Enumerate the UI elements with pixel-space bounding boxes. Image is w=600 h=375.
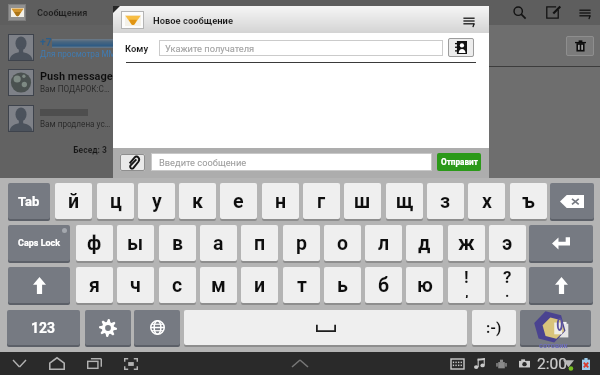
button[interactable]: ц (97, 183, 134, 219)
button[interactable]: е (220, 183, 257, 219)
button[interactable]: Screenshot saved (506, 352, 542, 375)
button[interactable]: Push message (0, 65, 230, 99)
button[interactable]: ъ (510, 183, 547, 219)
staticText: ю (417, 274, 433, 297)
button[interactable]: и (241, 267, 278, 303)
button[interactable]: л (365, 225, 402, 261)
button[interactable]: Screenshot (113, 352, 149, 375)
button[interactable]: х (468, 183, 505, 219)
button[interactable]: ж (448, 225, 485, 261)
button[interactable]: Recent apps (76, 352, 112, 375)
button[interactable]: г (303, 183, 340, 219)
button[interactable]: м (200, 267, 237, 303)
button[interactable]: Settings (85, 310, 131, 345)
staticText: Вам ПОДАРОК:С… (40, 84, 110, 94)
staticText: ъ (522, 190, 535, 213)
button[interactable]: Search (503, 0, 536, 25)
button[interactable]: р (283, 225, 320, 261)
button[interactable]: Expand (282, 352, 318, 375)
button[interactable]: Введите сообщение (151, 153, 432, 171)
button[interactable]: у (138, 183, 175, 219)
button[interactable]: Укажите получателя (159, 40, 443, 56)
button[interactable]: д (406, 225, 443, 261)
button[interactable]: Tab (8, 183, 50, 219)
button[interactable]: Compose message (536, 0, 569, 25)
button[interactable]: System (483, 352, 519, 375)
button[interactable]: й (55, 183, 92, 219)
staticText: Tab (18, 194, 40, 209)
button[interactable]: Caps Lock (8, 225, 70, 261)
staticText: ? (503, 267, 512, 287)
staticText: Caps Lock (18, 238, 61, 249)
button[interactable]: Enter (529, 225, 593, 261)
staticText: з (440, 190, 451, 213)
staticText: я (89, 274, 100, 297)
button[interactable]: ш (344, 183, 381, 219)
button[interactable]: ч (117, 267, 154, 303)
button[interactable]: ю (406, 267, 443, 303)
staticText: с (172, 274, 183, 297)
staticText: м (211, 274, 226, 297)
button[interactable]: Attach file (120, 154, 145, 171)
button[interactable]: щ (386, 183, 423, 219)
staticText: Push message (40, 70, 113, 83)
staticText: д (418, 232, 431, 255)
button[interactable]: а (200, 225, 237, 261)
button[interactable]: ы (117, 225, 154, 261)
button[interactable]: +7 (0, 30, 230, 64)
button[interactable]: ф (76, 225, 113, 261)
button[interactable]: в (159, 225, 196, 261)
staticText: э (502, 232, 513, 255)
button[interactable]: More options (569, 0, 600, 25)
button[interactable]: ! (448, 267, 485, 303)
staticText: , (465, 283, 469, 298)
button[interactable]: Shift (529, 267, 593, 303)
staticText: +7 (40, 36, 52, 48)
button[interactable]: ь (324, 267, 361, 303)
staticText: ш (354, 190, 371, 213)
button[interactable]: ? (489, 267, 526, 303)
staticText: сотовик (539, 341, 568, 350)
staticText: в (172, 232, 184, 255)
staticText: ж (458, 232, 475, 255)
button[interactable]: More options (454, 8, 484, 33)
staticText: Отправит (441, 157, 478, 167)
button[interactable]: т (283, 267, 320, 303)
button[interactable]: с (159, 267, 196, 303)
button[interactable]: я (76, 267, 113, 303)
staticText: Новое сообщение (153, 15, 233, 26)
button[interactable]: Hide keyboard (1, 352, 37, 375)
button[interactable]: Backspace (550, 183, 594, 219)
staticText: у (152, 190, 162, 213)
staticText: Для просмотра MMS (40, 49, 121, 59)
button[interactable]: Отправит (437, 153, 481, 171)
button[interactable]: б (365, 267, 402, 303)
button[interactable]: з (427, 183, 464, 219)
button[interactable]: о (324, 225, 361, 261)
button[interactable]: Home (39, 352, 75, 375)
button[interactable]: п (241, 225, 278, 261)
staticText: ф (87, 232, 102, 255)
button[interactable]: Delete (566, 36, 594, 56)
staticText: е (233, 190, 244, 213)
button[interactable]: :-) (472, 310, 516, 345)
button[interactable]: к (179, 183, 216, 219)
staticText: . (505, 283, 510, 298)
button[interactable]: Space (184, 310, 467, 345)
button[interactable]: Change language (134, 310, 180, 345)
button[interactable]: Choose contact (448, 38, 474, 57)
button[interactable]: Вам продлена ус… (0, 101, 230, 135)
button[interactable]: 123 (7, 310, 80, 345)
button[interactable]: э (489, 225, 526, 261)
button[interactable]: Emoji (520, 310, 591, 345)
button[interactable]: Music (461, 352, 497, 375)
button[interactable]: Shift (8, 267, 70, 303)
button[interactable]: н (262, 183, 299, 219)
staticText: к (192, 190, 203, 213)
staticText: Вам продлена ус… (40, 119, 111, 129)
staticText: о (337, 232, 349, 255)
staticText: р (296, 232, 307, 255)
staticText: ц (110, 190, 122, 213)
button[interactable]: Keyboard (439, 352, 475, 375)
staticText: Введите сообщение (159, 157, 247, 168)
